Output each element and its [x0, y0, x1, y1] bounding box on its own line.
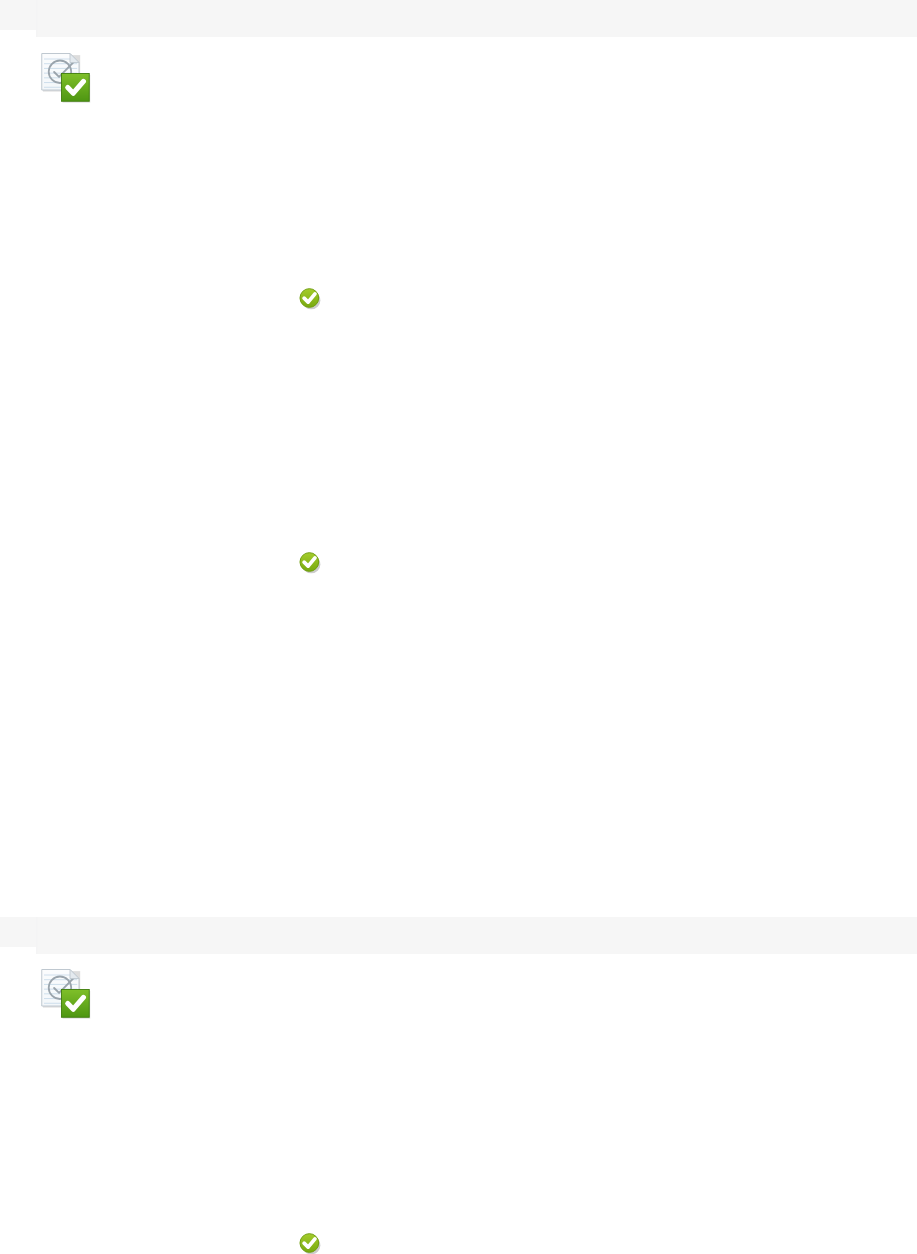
button[interactable]: Completed document [40, 968, 90, 1018]
button[interactable]: Verified [299, 1233, 321, 1254]
button[interactable]: Verified [299, 552, 321, 574]
button[interactable]: Verified [299, 288, 321, 310]
button[interactable]: Completed document [40, 52, 90, 102]
